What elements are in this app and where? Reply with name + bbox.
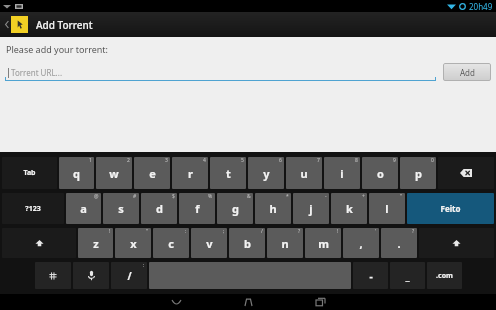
button[interactable]: Home (212, 294, 284, 310)
staticText: - (325, 193, 327, 200)
button[interactable]: Shift (2, 228, 76, 258)
staticText: ?123 (25, 204, 41, 214)
staticText: .com (436, 271, 453, 281)
staticText: v (206, 236, 213, 251)
button[interactable]: b (229, 228, 265, 258)
button[interactable]: p (400, 157, 436, 189)
button[interactable]: Add (443, 63, 491, 81)
staticText: o (377, 166, 384, 181)
button[interactable]: f (179, 193, 215, 224)
button[interactable]: s (103, 193, 139, 224)
staticText: z (93, 236, 99, 251)
button[interactable]: o (362, 157, 398, 189)
staticText: - (369, 269, 373, 283)
button[interactable]: Torrent URL... (5, 63, 436, 81)
button[interactable]: Tab (2, 157, 57, 189)
staticText: q (73, 166, 80, 181)
staticText: Please add your torrent: (6, 43, 108, 55)
staticText: k (346, 201, 353, 216)
button[interactable]: z (78, 228, 113, 258)
staticText: 7 (317, 157, 320, 164)
button[interactable]: - (353, 262, 388, 289)
button[interactable]: n (267, 228, 303, 258)
button[interactable]: u (286, 157, 322, 189)
button[interactable]: h (255, 193, 291, 224)
button[interactable]: j (293, 193, 329, 224)
staticText: f (195, 201, 200, 216)
staticText: 5 (241, 157, 244, 164)
staticText: l (385, 201, 389, 216)
staticText: " (400, 193, 403, 200)
staticText: * (286, 193, 289, 200)
staticText: d (156, 201, 163, 216)
button[interactable]: .com (427, 262, 462, 289)
staticText: h (269, 201, 277, 216)
button[interactable]: _ (390, 262, 425, 289)
staticText: s (118, 201, 124, 216)
button[interactable]: , (343, 228, 379, 258)
button[interactable]: Back (140, 294, 212, 310)
staticText: a (80, 201, 87, 216)
button[interactable]: v (191, 228, 227, 258)
staticText: % (208, 193, 213, 200)
button[interactable]: Shift (419, 228, 494, 258)
button[interactable]: x (115, 228, 151, 258)
button[interactable]: d (141, 193, 177, 224)
button[interactable]: y (248, 157, 284, 189)
staticText: ; (223, 228, 225, 235)
button[interactable]: t (210, 157, 246, 189)
button[interactable]: w (96, 157, 132, 189)
staticText: p (415, 166, 422, 181)
button[interactable]: Voice input (73, 262, 109, 289)
staticText: : (143, 262, 145, 269)
staticText: j (309, 201, 313, 216)
staticText: w (109, 166, 119, 181)
button[interactable]: k (331, 193, 367, 224)
staticText: Feito (440, 203, 461, 214)
button[interactable]: / (111, 262, 147, 289)
button[interactable]: c (153, 228, 189, 258)
button[interactable]: ?123 (2, 193, 64, 224)
staticText: 6 (279, 157, 282, 164)
staticText: 8 (355, 157, 358, 164)
staticText: , (359, 236, 363, 251)
button[interactable]: Navigate up (2, 12, 11, 37)
button[interactable]: r (172, 157, 208, 189)
staticText: y (263, 166, 270, 181)
staticText: _ (405, 269, 410, 283)
staticText: e (149, 166, 156, 181)
button[interactable]: Feito (407, 193, 494, 224)
staticText: u (300, 166, 308, 181)
button[interactable]: g (217, 193, 253, 224)
staticText: 20h49 (469, 1, 493, 12)
button[interactable]: l (369, 193, 405, 224)
staticText: t (226, 166, 231, 181)
button[interactable]: q (59, 157, 94, 189)
button[interactable]: Recent apps (284, 294, 356, 310)
button[interactable]: Backspace (438, 157, 494, 189)
staticText: Add (460, 67, 475, 78)
staticText: 0 (431, 157, 434, 164)
staticText: c (168, 236, 174, 251)
staticText: : (185, 228, 187, 235)
staticText: 2 (127, 157, 130, 164)
button[interactable]: i (324, 157, 360, 189)
staticText: x (130, 236, 137, 251)
staticText: m (318, 236, 329, 251)
staticText: ! (109, 228, 111, 235)
button[interactable]: a (66, 193, 101, 224)
staticText: " (146, 228, 149, 235)
button[interactable]: m (305, 228, 341, 258)
staticText: @ (94, 193, 99, 200)
staticText: Add Torrent (36, 18, 93, 32)
staticText: # (133, 193, 137, 200)
staticText: r (188, 166, 193, 181)
button[interactable]: Change language (35, 262, 71, 289)
staticText: 9 (393, 157, 396, 164)
staticText: & (247, 193, 251, 200)
staticText: 1 (89, 157, 92, 164)
button[interactable]: . (381, 228, 417, 258)
staticText: 3 (165, 157, 168, 164)
button[interactable]: e (134, 157, 170, 189)
